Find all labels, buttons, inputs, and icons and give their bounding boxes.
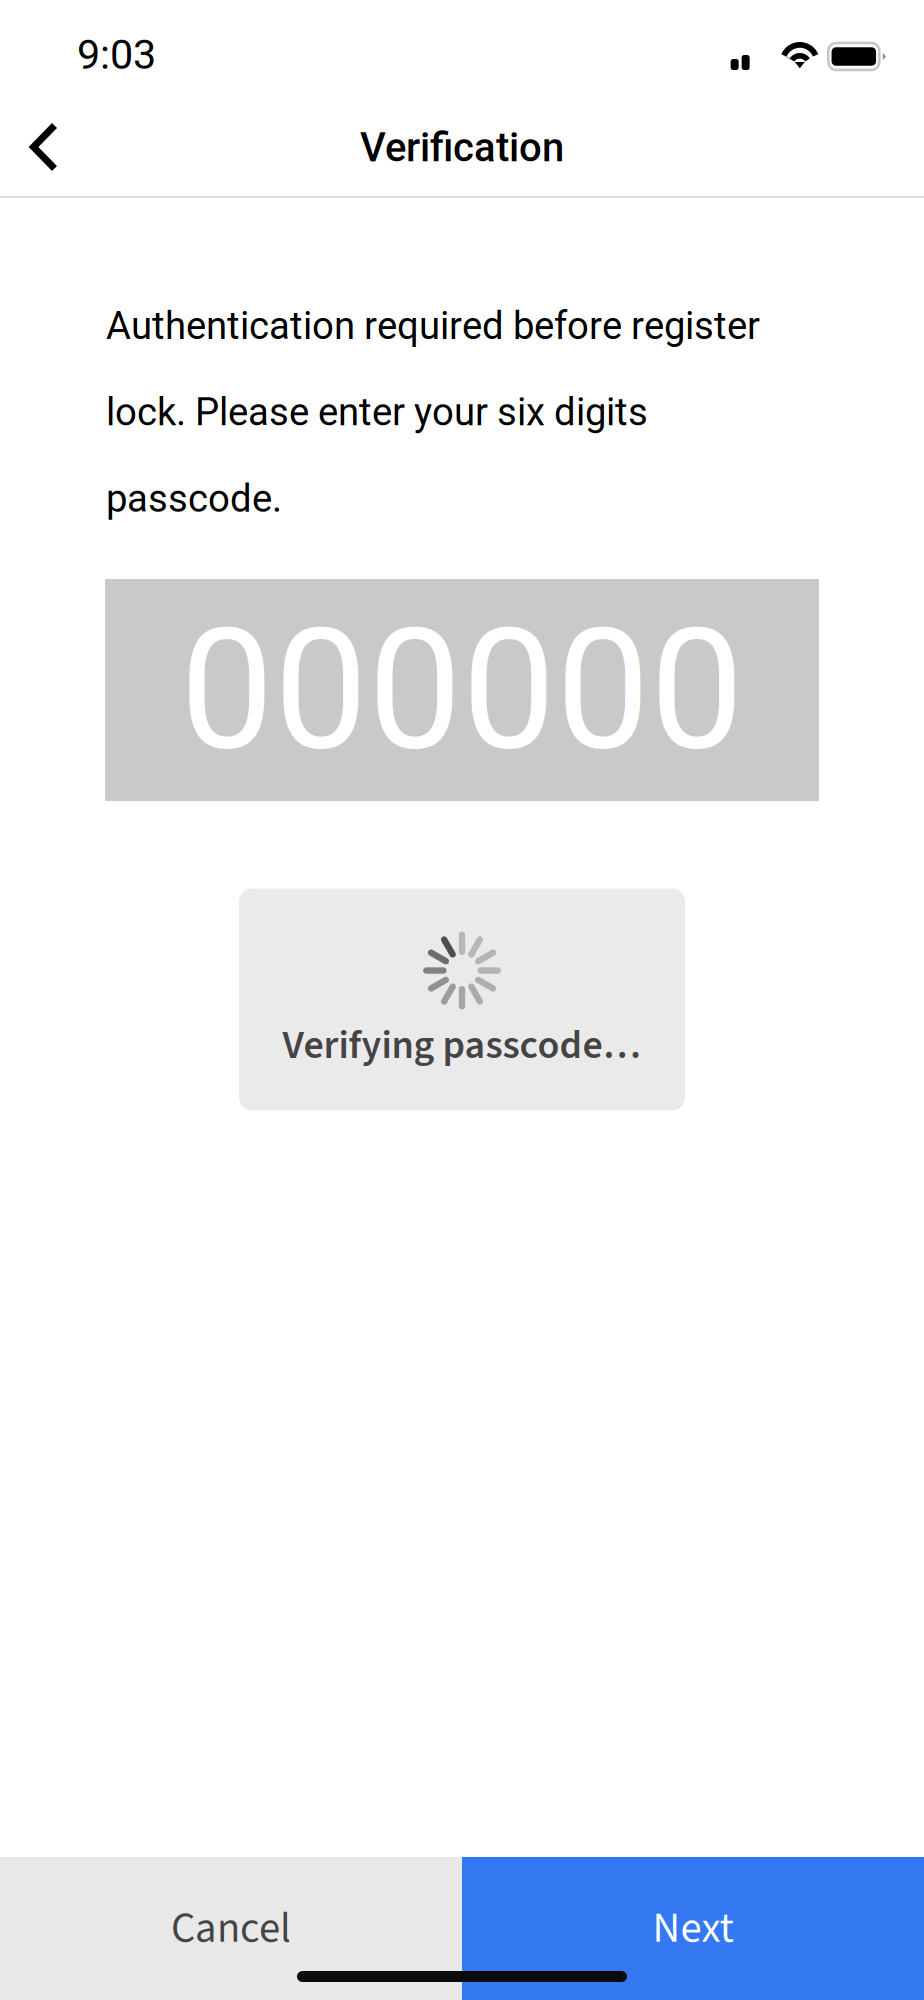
staticText: Authentication required before register …	[106, 303, 760, 521]
button[interactable]: Next	[462, 1857, 924, 2000]
staticText: Next	[652, 1898, 733, 1959]
staticText: Verifying passcode…	[282, 1017, 641, 1074]
staticText: 000000	[180, 592, 744, 788]
button[interactable]: Back	[0, 114, 86, 192]
staticText: 9:03	[77, 30, 156, 79]
staticText: Verification	[360, 124, 564, 171]
staticText: Cancel	[171, 1898, 291, 1959]
button[interactable]: Cancel	[0, 1857, 462, 2000]
